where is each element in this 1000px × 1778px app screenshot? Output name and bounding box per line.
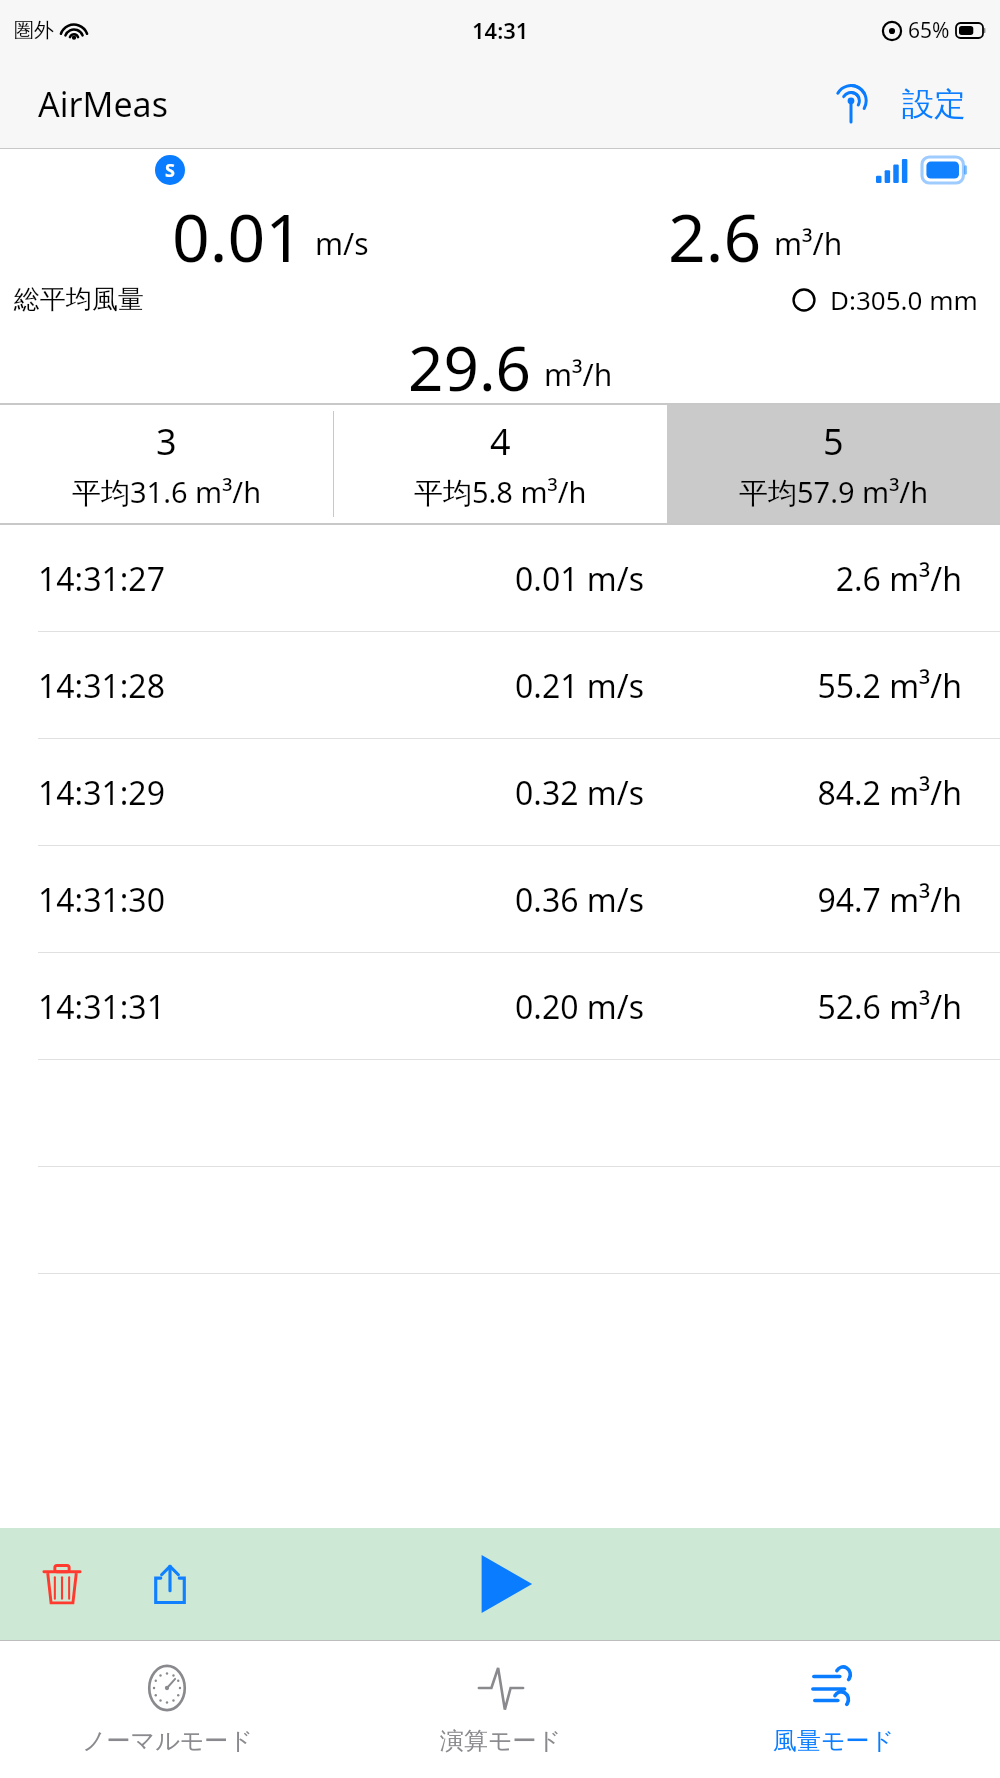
- button[interactable]: 14:31:29: [0, 739, 1000, 846]
- button[interactable]: 設定: [898, 74, 970, 134]
- staticText: 0.36 m/s: [355, 878, 644, 922]
- staticText: 14:31:31: [38, 985, 355, 1029]
- staticText: AirMeas: [38, 81, 168, 127]
- staticText: 平均57.9 m³/h: [739, 472, 929, 512]
- staticText: 29.6: [408, 325, 532, 403]
- staticText: 0.21 m/s: [355, 664, 644, 708]
- staticText: m/s: [315, 223, 369, 264]
- button[interactable]: ノーマルモード: [0, 1641, 334, 1778]
- button[interactable]: Connect sensor: [820, 73, 882, 135]
- button[interactable]: 4: [334, 403, 667, 525]
- staticText: 平均31.6 m³/h: [72, 472, 262, 512]
- staticText: 設定: [902, 84, 966, 124]
- button[interactable]: 演算モード: [334, 1641, 667, 1778]
- button[interactable]: 14:31:27: [0, 525, 1000, 632]
- button[interactable]: 14:31:31: [0, 953, 1000, 1060]
- button[interactable]: 風量モード: [667, 1641, 1000, 1778]
- staticText: 94.7 m³/h: [644, 878, 962, 922]
- staticText: 52.6 m³/h: [644, 985, 962, 1029]
- staticText: D:305.0 mm: [830, 282, 978, 317]
- staticText: 3: [156, 417, 177, 466]
- staticText: m³/h: [544, 354, 613, 395]
- staticText: 0.01 m/s: [355, 557, 644, 601]
- staticText: 2.6: [668, 191, 762, 273]
- button[interactable]: 3: [0, 403, 333, 525]
- button[interactable]: 14:31:30: [0, 846, 1000, 953]
- staticText: 14:31:30: [38, 878, 355, 922]
- staticText: 14:31:27: [38, 557, 355, 601]
- staticText: 演算モード: [440, 1726, 562, 1756]
- staticText: 0.32 m/s: [355, 771, 644, 815]
- staticText: 14:31:28: [38, 664, 355, 708]
- button[interactable]: Delete: [22, 1544, 102, 1624]
- staticText: 65%: [908, 16, 950, 45]
- staticText: 14:31: [472, 15, 529, 45]
- staticText: 14:31:29: [38, 771, 355, 815]
- staticText: 2.6 m³/h: [644, 557, 962, 601]
- staticText: 4: [490, 417, 511, 466]
- staticText: 84.2 m³/h: [644, 771, 962, 815]
- button[interactable]: Start measurement: [456, 1534, 556, 1634]
- staticText: 風量モード: [773, 1726, 895, 1756]
- staticText: 平均5.8 m³/h: [414, 472, 587, 512]
- staticText: m³/h: [774, 223, 843, 264]
- staticText: 0.20 m/s: [355, 985, 644, 1029]
- button[interactable]: 14:31:28: [0, 632, 1000, 739]
- staticText: 0.01: [172, 191, 303, 273]
- staticText: 5: [823, 417, 844, 466]
- staticText: S: [165, 158, 175, 183]
- button[interactable]: Share: [130, 1544, 210, 1624]
- staticText: 圏外: [14, 18, 54, 43]
- staticText: 55.2 m³/h: [644, 664, 962, 708]
- staticText: ノーマルモード: [82, 1726, 253, 1756]
- button[interactable]: 5: [667, 403, 1000, 525]
- staticText: 総平均風量: [14, 283, 144, 316]
